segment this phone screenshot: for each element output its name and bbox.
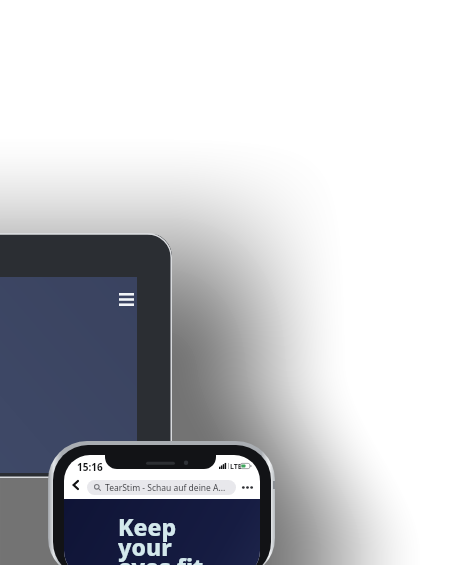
staticText: your bbox=[118, 531, 172, 562]
button[interactable]: Menu bbox=[119, 293, 134, 306]
staticText: 15:16 bbox=[77, 460, 103, 474]
button[interactable]: Back bbox=[69, 478, 83, 492]
staticText: eyes fit bbox=[118, 551, 204, 565]
button[interactable]: TearStim - Schau auf deine A... bbox=[87, 480, 236, 495]
staticText: TearStim - Schau auf deine A... bbox=[105, 482, 226, 494]
button[interactable]: More bbox=[238, 480, 256, 495]
staticText: Keep bbox=[118, 511, 177, 542]
staticText: LTE bbox=[230, 462, 242, 472]
